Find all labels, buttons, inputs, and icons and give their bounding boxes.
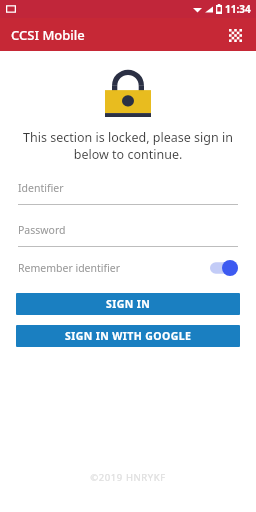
staticText: CCSI Mobile — [11, 26, 85, 44]
button[interactable]: SIGN IN WITH GOOGLE — [16, 325, 240, 347]
button[interactable]: Remember identifier — [18, 255, 238, 281]
staticText: SIGN IN — [106, 297, 151, 311]
staticText: Remember identifier — [18, 261, 121, 275]
button[interactable]: Menu — [222, 22, 248, 48]
button[interactable]: Identifier — [18, 181, 238, 205]
button[interactable]: SIGN IN — [16, 293, 240, 315]
staticText: SIGN IN WITH GOOGLE — [65, 329, 192, 343]
button[interactable]: Password — [18, 223, 238, 247]
staticText: Password — [18, 223, 66, 237]
staticText: Identifier — [18, 181, 64, 195]
staticText: This section is locked, please sign in b… — [18, 129, 238, 163]
staticText: ©2019 HNRYKF — [0, 471, 256, 484]
staticText: 11:34 — [225, 2, 251, 16]
